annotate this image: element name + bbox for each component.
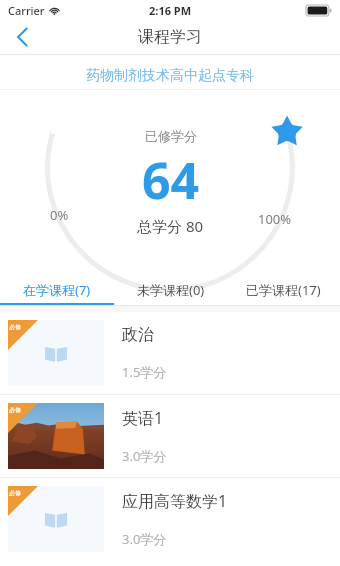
staticText: 100% [258, 210, 292, 228]
button[interactable]: 已学课程(17) [227, 275, 340, 305]
staticText: 英语1 [122, 407, 164, 429]
staticText: 已修学分 [145, 128, 197, 144]
staticText: 应用高等数学1 [122, 490, 228, 512]
staticText: Carrier [8, 3, 45, 18]
staticText: 3.0学分 [122, 447, 167, 465]
button[interactable]: 必修 [0, 478, 340, 560]
button[interactable]: 必修 [0, 395, 340, 477]
staticText: 2:16 PM [149, 3, 192, 18]
button[interactable]: 在学课程(7) [0, 275, 114, 305]
staticText: 1.5学分 [122, 363, 167, 381]
staticText: 0% [50, 206, 69, 224]
staticText: 必修 [9, 406, 21, 414]
button[interactable]: 必修 [0, 312, 340, 394]
staticText: 3.0学分 [122, 530, 167, 548]
staticText: 政治 [122, 325, 154, 345]
button[interactable]: 未学课程(0) [114, 275, 227, 305]
staticText: 在学课程(7) [23, 281, 91, 299]
staticText: 药物制剂技术高中起点专科 [0, 67, 340, 85]
staticText: 课程学习 [138, 27, 202, 47]
staticText: 64 [142, 146, 200, 214]
staticText: 必修 [9, 489, 21, 497]
staticText: 已学课程(17) [246, 281, 321, 299]
button[interactable]: Back [0, 20, 44, 54]
staticText: 未学课程(0) [137, 281, 205, 299]
staticText: 总学分 80 [137, 216, 204, 236]
staticText: 必修 [9, 323, 21, 331]
